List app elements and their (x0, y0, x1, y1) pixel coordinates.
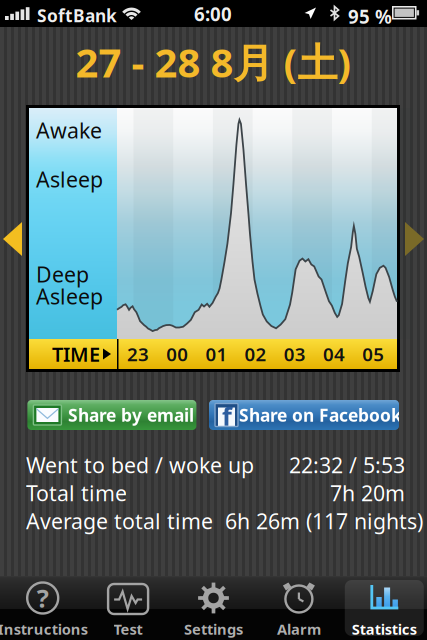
staticText: 6h 26m (117 nights) (225, 507, 423, 535)
staticText: f (222, 399, 232, 433)
staticText: 27 - 28 8月 (土) (75, 35, 351, 88)
button[interactable]: Next night (405, 222, 424, 256)
staticText: 22:32 / 5:53 (289, 451, 405, 479)
staticText: Asleep (36, 165, 103, 193)
staticText: Test (114, 619, 143, 639)
staticText: Average total time (26, 507, 213, 535)
staticText: Share by email (68, 403, 194, 426)
staticText: Statistics (352, 619, 417, 639)
staticText: Asleep (36, 282, 103, 310)
staticText: SoftBank (37, 4, 117, 27)
button[interactable]: Test (85, 576, 171, 640)
button[interactable]: Previous night (3, 222, 22, 256)
staticText: Went to bed / woke up (26, 451, 254, 479)
staticText: 00 (166, 342, 188, 366)
button[interactable]: Alarm (256, 576, 342, 640)
staticText: Settings (184, 619, 243, 639)
button[interactable]: ? (0, 576, 85, 640)
staticText: Alarm (277, 619, 321, 639)
staticText: 04 (323, 342, 345, 366)
staticText: 95 % (348, 4, 392, 29)
staticText: ? (37, 581, 49, 615)
staticText: Instructions (0, 619, 88, 639)
button[interactable]: f (209, 400, 399, 430)
staticText: 7h 20m (330, 479, 405, 507)
staticText: 6:00 (194, 2, 232, 26)
staticText: 05 (362, 342, 384, 366)
button[interactable]: Settings (171, 576, 256, 640)
staticText: 01 (205, 342, 227, 366)
staticText: Share on Facebook (239, 403, 402, 426)
staticText: 03 (284, 342, 306, 366)
button[interactable]: Share by email (27, 400, 196, 430)
staticText: Total time (26, 479, 127, 507)
staticText: TIME (52, 341, 100, 367)
staticText: Awake (36, 116, 102, 144)
button[interactable]: Statistics (342, 576, 427, 640)
staticText: 02 (245, 342, 267, 366)
staticText: Deep (36, 260, 89, 288)
staticText: 23 (127, 342, 149, 366)
